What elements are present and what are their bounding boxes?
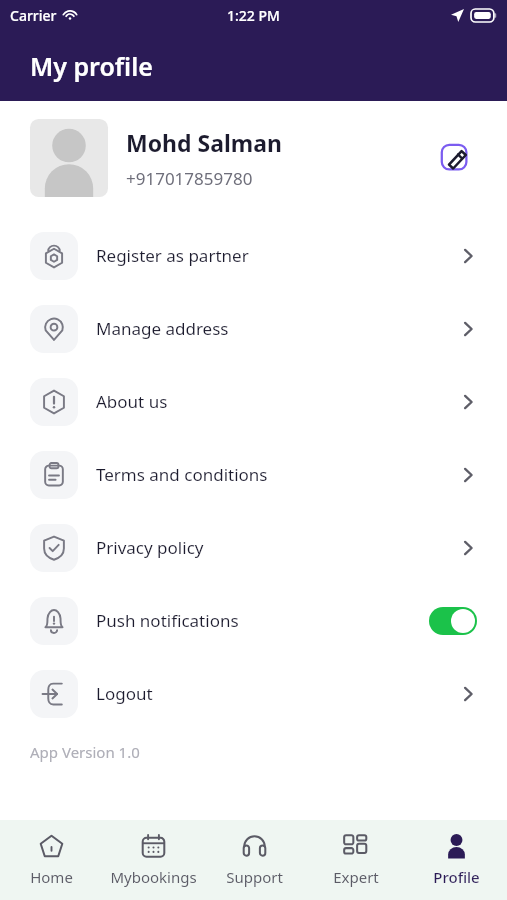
- staticText: Home: [30, 867, 73, 887]
- button[interactable]: Register as partner: [0, 219, 507, 292]
- button[interactable]: Expert: [305, 820, 406, 900]
- staticText: Terms and conditions: [96, 463, 459, 486]
- staticText: +917017859780: [126, 167, 253, 190]
- staticText: Register as partner: [96, 244, 459, 267]
- button[interactable]: Manage address: [0, 292, 507, 365]
- staticText: Mohd Salman: [126, 127, 282, 158]
- button[interactable]: Mybookings: [102, 820, 204, 900]
- staticText: Privacy policy: [96, 536, 459, 559]
- button[interactable]: Edit profile: [433, 136, 477, 180]
- button[interactable]: About us: [0, 365, 507, 438]
- button[interactable]: Logout: [0, 657, 507, 730]
- staticText: Support: [226, 867, 283, 887]
- button[interactable]: Push notifications toggle: [429, 607, 477, 635]
- button[interactable]: Terms and conditions: [0, 438, 507, 511]
- staticText: Carrier: [10, 6, 57, 25]
- button[interactable]: Privacy policy: [0, 511, 507, 584]
- button[interactable]: Support: [204, 820, 305, 900]
- button[interactable]: Push notifications: [0, 584, 507, 657]
- staticText: Expert: [333, 867, 379, 887]
- button[interactable]: Home: [0, 820, 102, 900]
- button[interactable]: Profile: [406, 820, 507, 900]
- staticText: My profile: [30, 49, 153, 83]
- staticText: About us: [96, 390, 459, 413]
- staticText: Mybookings: [110, 867, 197, 887]
- staticText: Logout: [96, 682, 459, 705]
- staticText: Profile: [433, 867, 480, 887]
- staticText: App Version 1.0: [30, 742, 140, 762]
- staticText: Manage address: [96, 317, 459, 340]
- staticText: 1:22 PM: [227, 6, 280, 25]
- staticText: Push notifications: [96, 609, 429, 632]
